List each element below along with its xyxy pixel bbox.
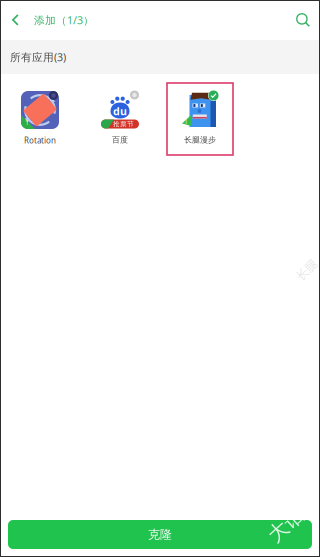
staticText: Rotation xyxy=(24,135,56,146)
staticText: 百度 xyxy=(112,135,128,145)
staticText: du xyxy=(113,104,127,118)
staticText: 1 xyxy=(184,117,188,126)
staticText: 长腿 xyxy=(295,263,319,277)
staticText: 大话 xyxy=(266,513,306,537)
staticText: 长腿漫步 xyxy=(184,135,216,145)
button[interactable]: 1 xyxy=(160,80,240,158)
staticText: 克隆 xyxy=(148,527,172,542)
button[interactable]: Search xyxy=(286,0,320,40)
staticText: 添加（1/3） xyxy=(34,13,94,27)
button[interactable]: 1 xyxy=(0,80,80,158)
staticText: 所有应用(3) xyxy=(10,50,66,64)
button[interactable]: du xyxy=(80,80,160,158)
button[interactable]: 添加（1/3） xyxy=(0,0,104,40)
button[interactable]: 克隆 xyxy=(8,520,312,549)
staticText: 1 xyxy=(25,118,29,127)
staticText: 抢票节 xyxy=(113,120,134,128)
